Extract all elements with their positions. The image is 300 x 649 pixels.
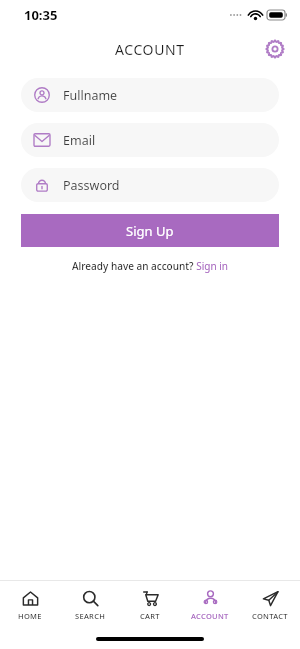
button[interactable]: CART	[120, 590, 180, 621]
staticText: Email	[63, 132, 96, 149]
staticText: ACCOUNT	[191, 611, 229, 621]
staticText: SEARCH	[75, 611, 106, 621]
staticText: Fullname	[63, 87, 118, 104]
staticText: Sign Up	[126, 222, 174, 240]
staticText: CONTACT	[252, 611, 288, 621]
button[interactable]: HOME	[0, 590, 60, 621]
staticText: HOME	[18, 611, 42, 621]
button[interactable]: Settings	[258, 32, 292, 66]
button[interactable]: Already have an account? Sign in	[72, 259, 228, 273]
staticText: CART	[140, 611, 160, 621]
button[interactable]: ACCOUNT	[180, 590, 240, 621]
button[interactable]: Email	[21, 123, 279, 157]
staticText: 10:35	[24, 6, 58, 24]
button[interactable]: Sign Up	[21, 214, 279, 247]
staticText: Already have an account? Sign in	[72, 259, 228, 273]
button[interactable]: SEARCH	[60, 590, 120, 621]
button[interactable]: Password	[21, 168, 279, 202]
button[interactable]: CONTACT	[240, 590, 300, 621]
staticText: Password	[63, 177, 120, 194]
button[interactable]: Fullname	[21, 78, 279, 112]
staticText: ACCOUNT	[115, 40, 185, 59]
